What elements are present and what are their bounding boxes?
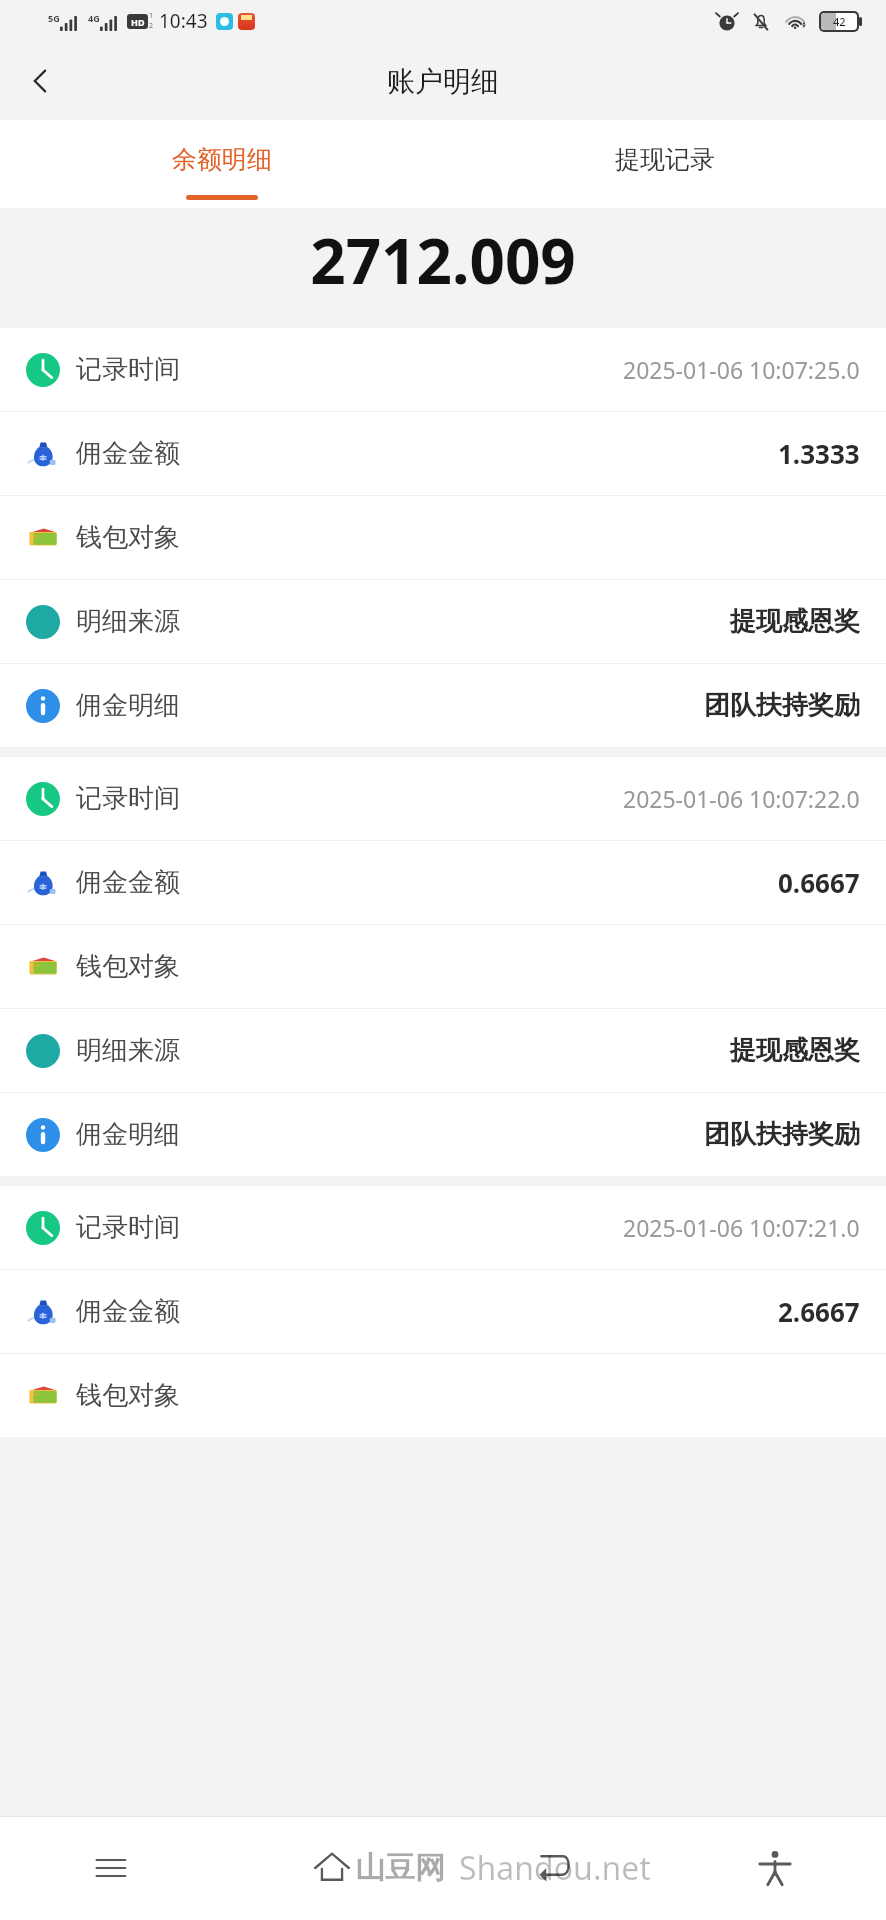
button[interactable]: 记录时间 [0, 328, 886, 411]
button[interactable]: 明细来源 [0, 1009, 886, 1092]
button[interactable]: 佣金明细 [0, 664, 886, 747]
staticText: 佣金金额 [76, 437, 180, 470]
button[interactable]: Back [10, 50, 72, 112]
staticText: 2025-01-06 10:07:21.0 [623, 1212, 860, 1243]
staticText: 2 [149, 21, 154, 31]
staticText: 佣金明细 [76, 1118, 180, 1151]
staticText: 团队扶持奖励 [704, 689, 860, 722]
staticText: 记录时间 [76, 353, 180, 386]
button[interactable]: 明细来源 [0, 580, 886, 663]
staticText: 1.3333 [778, 436, 860, 471]
staticText: 记录时间 [76, 1211, 180, 1244]
button[interactable]: Home [221, 1816, 442, 1920]
staticText: HD [131, 16, 145, 28]
button[interactable]: 余额明细 [0, 120, 443, 208]
staticText: 1 [149, 11, 154, 21]
staticText: 5G [48, 12, 60, 24]
button[interactable]: 钱包对象 [0, 496, 886, 579]
button[interactable]: 佣金明细 [0, 1093, 886, 1176]
button[interactable]: 记录时间 [0, 757, 886, 840]
staticText: 记录时间 [76, 782, 180, 815]
button[interactable]: 佣金金额 [0, 1270, 886, 1353]
button[interactable]: Back [442, 1816, 664, 1920]
button[interactable]: 佣金金额 [0, 841, 886, 924]
staticText: 2.6667 [778, 1294, 860, 1329]
staticText: 佣金金额 [76, 866, 180, 899]
staticText: 佣金金额 [76, 1295, 180, 1328]
staticText: 团队扶持奖励 [704, 1118, 860, 1151]
staticText: 明细来源 [76, 1034, 180, 1067]
staticText: 明细来源 [76, 605, 180, 638]
button[interactable]: Menu [0, 1816, 221, 1920]
staticText: 2025-01-06 10:07:25.0 [623, 354, 860, 385]
button[interactable]: 记录时间 [0, 1186, 886, 1269]
staticText: 钱包对象 [76, 1379, 180, 1412]
staticText: 42 [833, 14, 846, 29]
staticText: 提现记录 [615, 144, 715, 175]
staticText: 0.6667 [778, 865, 860, 900]
staticText: 2025-01-06 10:07:22.0 [623, 783, 860, 814]
staticText: Shandou.net [459, 1846, 651, 1890]
staticText: 余额明细 [172, 144, 272, 175]
button[interactable]: 钱包对象 [0, 925, 886, 1008]
staticText: 4G [88, 12, 100, 24]
button[interactable]: Accessibility [664, 1816, 886, 1920]
staticText: 10:43 [159, 8, 208, 34]
staticText: 2712.009 [310, 218, 576, 302]
button[interactable]: 提现记录 [443, 120, 886, 208]
staticText: 钱包对象 [76, 521, 180, 554]
staticText: 钱包对象 [76, 950, 180, 983]
button[interactable]: 佣金金额 [0, 412, 886, 495]
staticText: 提现感恩奖 [730, 1034, 860, 1067]
staticText: 提现感恩奖 [730, 605, 860, 638]
staticText: 佣金明细 [76, 689, 180, 722]
button[interactable]: 钱包对象 [0, 1354, 886, 1437]
staticText: 账户明细 [387, 64, 499, 99]
staticText: 山豆网 [355, 1849, 445, 1887]
